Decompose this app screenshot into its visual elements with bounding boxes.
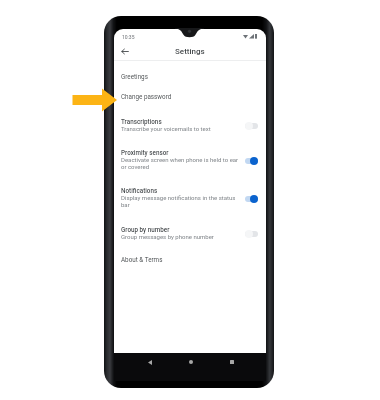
staticText: Group by number <box>121 226 170 233</box>
staticText: Display message notifications in the sta… <box>121 194 236 208</box>
staticText: Settings <box>175 47 205 56</box>
staticText: Group messages by phone number <box>121 233 214 240</box>
button[interactable]: Group by number <box>114 223 266 245</box>
staticText: Deactivate screen when phone is held to … <box>121 156 239 170</box>
staticText: Change password <box>121 93 172 100</box>
staticText: Proximity sensor <box>121 149 169 156</box>
staticText: Transcriptions <box>121 118 162 125</box>
staticText: About & Terms <box>121 256 163 263</box>
button[interactable]: Transcriptions <box>114 115 266 137</box>
staticText: 10:35 <box>122 34 135 40</box>
button[interactable]: Back <box>118 44 132 58</box>
button[interactable]: About & Terms <box>114 249 266 269</box>
staticText: Transcribe your voicemails to text <box>121 125 211 132</box>
button[interactable]: Recents <box>211 353 252 371</box>
button[interactable]: Notifications <box>114 184 266 213</box>
button[interactable]: Greetings <box>114 66 266 86</box>
button[interactable]: Home <box>170 353 211 371</box>
staticText: Notifications <box>121 187 158 194</box>
button[interactable]: Back <box>129 353 170 371</box>
button[interactable]: Proximity sensor <box>114 146 266 175</box>
staticText: Greetings <box>121 73 148 80</box>
button[interactable]: Change password <box>114 86 266 106</box>
